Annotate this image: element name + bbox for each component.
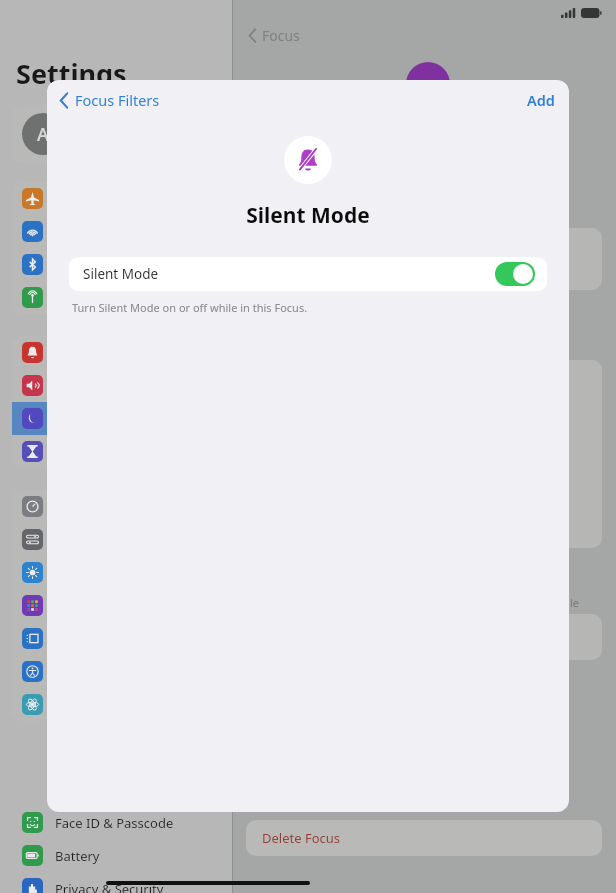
button[interactable] (12, 336, 220, 369)
button[interactable] (12, 248, 220, 281)
staticText: Privacy & Security (55, 880, 164, 893)
staticText: A (37, 122, 49, 147)
button[interactable]: Battery (22, 839, 222, 872)
button[interactable]: Privacy & Security (22, 872, 222, 893)
staticText: Focus (262, 26, 300, 45)
staticText: Turn Silent Mode on or off while in this… (72, 300, 308, 315)
staticText: Focus Filters (75, 90, 160, 110)
button[interactable] (12, 589, 220, 622)
button[interactable] (12, 215, 220, 248)
button[interactable] (12, 556, 220, 589)
button[interactable] (12, 435, 220, 468)
button[interactable]: Focus (248, 26, 300, 45)
button[interactable] (12, 402, 220, 435)
button[interactable] (12, 281, 220, 314)
staticText: Silent Mode (83, 265, 159, 283)
staticText: Battery (55, 847, 100, 865)
button[interactable]: A (12, 105, 220, 163)
button[interactable]: Silent Mode toggle, on (495, 262, 535, 286)
button[interactable]: Focus Filters (59, 90, 160, 110)
button[interactable] (12, 523, 220, 556)
staticText: Delete Focus (262, 829, 341, 847)
staticText: Add (527, 90, 555, 110)
staticText: le (570, 595, 580, 610)
staticText: Silent Mode (246, 201, 370, 230)
button[interactable]: Delete Focus (246, 820, 602, 856)
staticText: Settings (16, 55, 127, 92)
button[interactable]: Add (527, 90, 555, 110)
button[interactable] (12, 688, 220, 721)
button[interactable] (12, 490, 220, 523)
button[interactable] (12, 655, 220, 688)
button[interactable]: Silent Mode (69, 257, 547, 291)
button[interactable] (12, 369, 220, 402)
button[interactable]: Face ID & Passcode (22, 806, 222, 839)
staticText: Face ID & Passcode (55, 814, 174, 832)
button[interactable] (12, 622, 220, 655)
button[interactable] (12, 182, 220, 215)
